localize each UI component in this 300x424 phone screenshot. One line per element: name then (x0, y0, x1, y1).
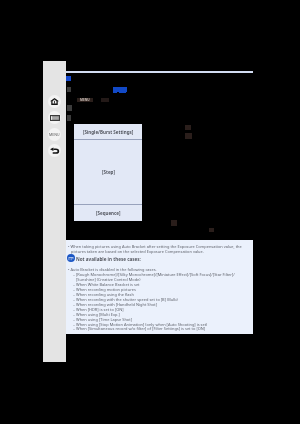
staticText: – When using [Stop Motion Animation] (on… (73, 322, 208, 327)
staticText: MENU (49, 132, 60, 137)
staticText: – When recording motion pictures (73, 287, 136, 292)
staticText: – When recording using the flash (73, 292, 134, 297)
staticText: MENU (80, 98, 90, 102)
staticText: – When using [Multi Exp.] (73, 312, 120, 317)
staticText: – When [Simultaneous record w/o filter] … (73, 326, 206, 331)
staticText: • When taking pictures using Auto Bracke… (68, 244, 242, 249)
staticText: [Step] (102, 169, 115, 175)
button[interactable]: Home (48, 95, 61, 108)
staticText: – When White Balance Bracket is set (73, 282, 140, 287)
staticText: – When using [Time Lapse Shot] (73, 317, 132, 322)
button[interactable]: Menu (48, 128, 61, 141)
staticText: pictures taken are based on the selected… (71, 249, 204, 254)
staticText: – [Rough Monochrome]/[Silky Monochrome]/… (73, 272, 235, 277)
staticText: • Auto Bracket is disabled in the follow… (68, 267, 157, 272)
staticText: [Single/Burst Settings] (83, 129, 134, 135)
staticText: Not available in these cases: (76, 256, 141, 262)
staticText: [Sequence] (96, 210, 121, 216)
staticText: – When recording with [Handheld Night Sh… (73, 302, 158, 307)
button[interactable]: Contents (48, 111, 61, 124)
staticText: – When recording with the shutter speed … (73, 297, 178, 302)
staticText: [Sunshine] (Creative Control Mode) (73, 277, 141, 282)
staticText: – When [HDR] is set to [ON] (73, 307, 124, 312)
button[interactable]: Back (48, 144, 61, 157)
